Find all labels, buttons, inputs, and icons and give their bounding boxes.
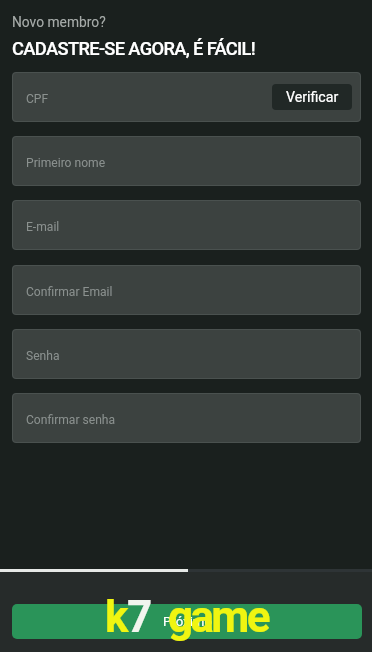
button[interactable]: Confirmar senha xyxy=(12,393,361,443)
staticText: Confirmar senha xyxy=(26,413,116,427)
button[interactable]: Senha xyxy=(12,329,361,379)
staticText: CADASTRE-SE AGORA, É FÁCIL! xyxy=(12,38,256,59)
staticText: Novo membro? xyxy=(12,14,106,30)
button[interactable]: Confirmar Email xyxy=(12,265,361,315)
staticText: 7 xyxy=(127,591,153,643)
button[interactable]: Próximo xyxy=(12,604,362,639)
staticText: Confirmar Email xyxy=(26,285,113,299)
staticText: CPF xyxy=(26,92,49,106)
staticText: game xyxy=(168,591,268,643)
staticText: Senha xyxy=(26,349,60,363)
button[interactable]: Verificar CPF xyxy=(272,84,352,110)
staticText: Primeiro nome xyxy=(26,156,106,170)
button[interactable]: E-mail xyxy=(12,200,361,250)
staticText: Verificar xyxy=(286,89,339,106)
staticText: E-mail xyxy=(26,220,60,234)
staticText: Próximo xyxy=(163,614,212,629)
button[interactable]: CPF xyxy=(12,72,361,122)
button[interactable]: Primeiro nome xyxy=(12,136,361,186)
staticText: k xyxy=(105,591,129,643)
